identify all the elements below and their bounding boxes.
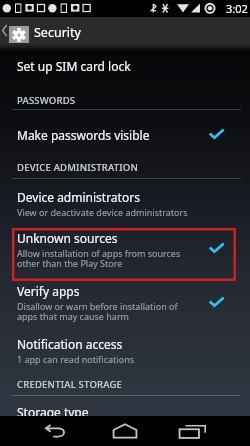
- staticText: Security: [34, 24, 81, 41]
- staticText: View or deactivate device administrators: [17, 206, 188, 218]
- button[interactable]: Home: [98, 416, 152, 446]
- button[interactable]: Storage type: [0, 398, 250, 426]
- button[interactable]: Navigate up: [0, 17, 9, 44]
- button[interactable]: Device administrators: [0, 184, 250, 222]
- staticText: Set up SIM card lock: [17, 58, 131, 74]
- button[interactable]: Back: [28, 416, 82, 446]
- staticText: Disallow or warn before installation of …: [17, 300, 178, 323]
- button[interactable]: Notification access: [0, 331, 250, 369]
- staticText: Notification access: [17, 336, 123, 352]
- button[interactable]: Unknown sources: [0, 225, 250, 274]
- button[interactable]: Verify apps: [0, 278, 250, 327]
- staticText: PASSWORDS: [17, 94, 76, 107]
- staticText: 3:02: [226, 1, 248, 16]
- staticText: DEVICE ADMINISTRATION: [17, 161, 139, 174]
- staticText: Make passwords visible: [17, 127, 150, 143]
- staticText: Storage type: [17, 404, 89, 420]
- staticText: CREDENTIAL STORAGE: [17, 378, 123, 391]
- button[interactable]: Make passwords visible: [0, 120, 250, 149]
- staticText: Unknown sources: [17, 230, 118, 246]
- button[interactable]: Set up SIM card lock: [0, 52, 250, 80]
- staticText: Verify apps: [17, 283, 80, 299]
- button[interactable]: Recent apps: [165, 416, 219, 446]
- staticText: Device administrators: [17, 189, 140, 205]
- staticText: 1 app can read notifications: [17, 353, 135, 365]
- staticText: Allow installation of apps from sources …: [17, 247, 181, 270]
